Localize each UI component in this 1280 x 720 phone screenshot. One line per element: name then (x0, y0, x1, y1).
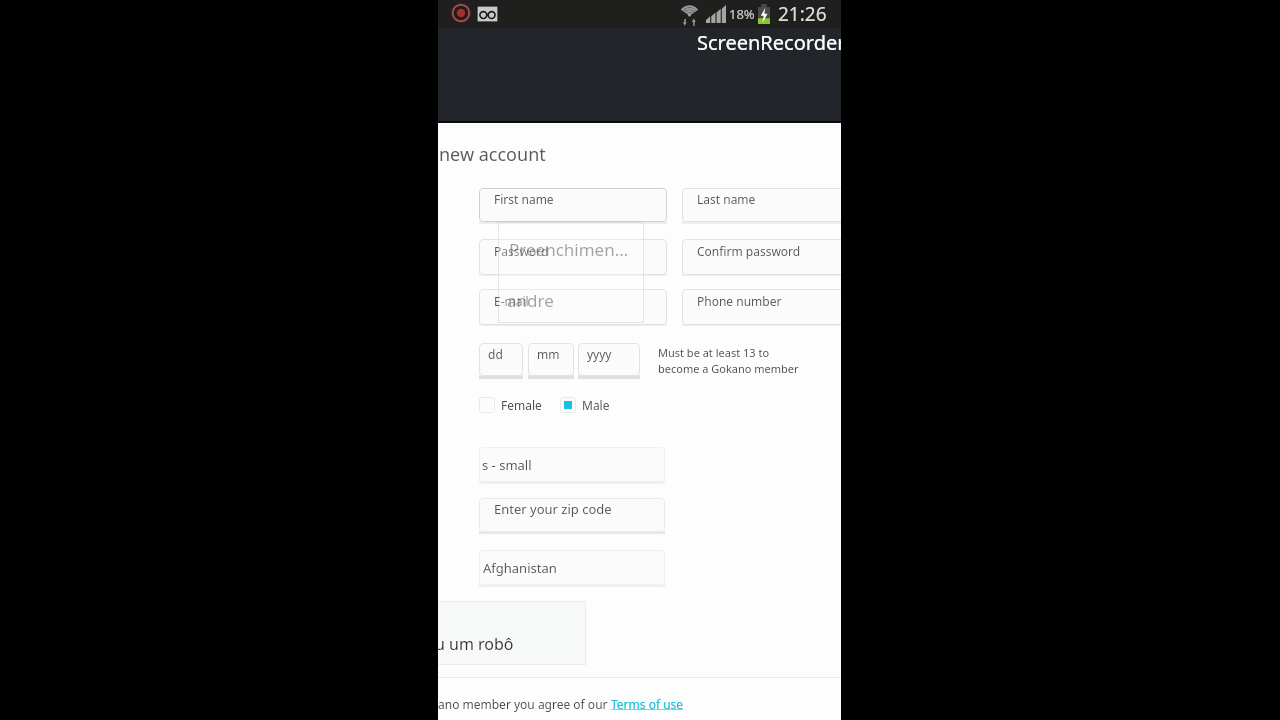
staticText: s - small (482, 456, 532, 474)
button[interactable]: Last name (682, 188, 841, 222)
staticText: ano member you agree of our (438, 696, 611, 712)
staticText: Confirm password (697, 243, 801, 259)
button[interactable]: E-mail (479, 289, 667, 325)
button[interactable]: Afghanistan (479, 550, 665, 585)
staticText: 21:26 (778, 1, 827, 27)
staticText: andre (507, 289, 554, 312)
button[interactable]: Confirm password (682, 239, 841, 275)
button[interactable]: mm (528, 343, 574, 376)
button[interactable]: First name (479, 188, 667, 222)
button[interactable]: Screen recording active (451, 3, 471, 23)
button[interactable]: yyyy (578, 343, 640, 376)
staticText: u um robô (438, 633, 514, 655)
staticText: Phone number (697, 293, 782, 309)
staticText: 18% (729, 5, 755, 23)
staticText: Must be at least 13 to become a Gokano m… (658, 345, 799, 376)
button[interactable]: Phone number (682, 289, 841, 325)
staticText: Afghanistan (483, 559, 557, 577)
staticText: dd (488, 346, 503, 362)
button[interactable]: dd (479, 343, 523, 376)
staticText: Female (501, 397, 542, 413)
staticText: Preenchimen... (509, 238, 629, 261)
staticText: new account (439, 142, 546, 167)
button[interactable] (438, 601, 586, 665)
button[interactable]: Female (479, 397, 546, 413)
button[interactable]: Terms of use (611, 696, 684, 712)
staticText: mm (537, 346, 560, 362)
button[interactable]: Enter your zip code (479, 498, 665, 532)
staticText: Male (582, 397, 610, 413)
button[interactable]: Password (479, 239, 667, 275)
staticText: Password (494, 243, 549, 259)
staticText: yyyy (587, 346, 612, 362)
staticText: Last name (697, 191, 756, 207)
staticText: Enter your zip code (494, 500, 612, 518)
staticText: Terms of use (611, 696, 684, 712)
button[interactable]: Male (560, 397, 614, 413)
button[interactable]: ScreenRecorder (697, 29, 841, 56)
button[interactable]: s - small (479, 447, 665, 482)
staticText: ScreenRecorder (697, 29, 841, 56)
staticText: E-mail (494, 293, 529, 309)
staticText: First name (494, 191, 554, 207)
button[interactable]: Voicemail (476, 5, 499, 23)
